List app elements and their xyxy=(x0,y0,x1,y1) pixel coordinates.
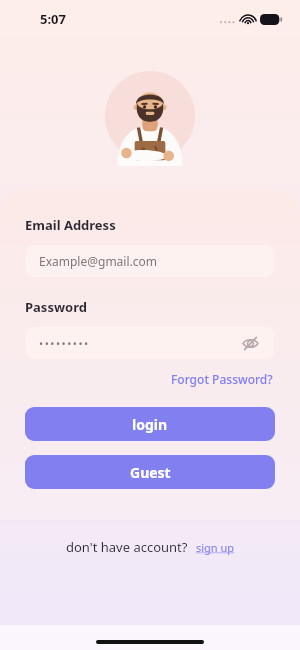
staticText: Example@gmail.com xyxy=(39,253,157,269)
button[interactable]: ••••••••• xyxy=(25,326,275,360)
button[interactable]: Show password xyxy=(239,332,261,354)
staticText: Forgot Password? xyxy=(171,371,273,387)
staticText: 5:07 xyxy=(40,10,66,28)
staticText: Guest xyxy=(130,463,171,482)
button[interactable]: sign up xyxy=(196,540,235,555)
button[interactable]: Forgot Password? xyxy=(169,369,275,389)
staticText: sign up xyxy=(196,540,235,555)
staticText: Email Address xyxy=(25,216,116,234)
button[interactable]: Example@gmail.com xyxy=(25,244,275,278)
staticText: don't have account? xyxy=(66,538,188,556)
button[interactable]: login xyxy=(25,407,275,441)
staticText: ••••••••• xyxy=(39,336,90,351)
staticText: Password xyxy=(25,298,87,316)
staticText: login xyxy=(132,415,168,434)
button[interactable]: Guest xyxy=(25,455,275,489)
